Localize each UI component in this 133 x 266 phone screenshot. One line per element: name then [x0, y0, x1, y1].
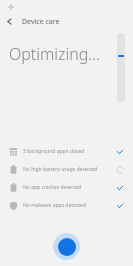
button[interactable]: Stop optimizing [53, 233, 80, 260]
staticText: 3 background apps closed [23, 148, 115, 155]
button[interactable]: No high battery usage detected [0, 160, 133, 178]
staticText: Device care [22, 17, 60, 27]
button[interactable]: No malware apps detected [0, 196, 133, 214]
button[interactable]: No app crashes detected [0, 178, 133, 196]
staticText: Optimizing... [9, 43, 100, 65]
button[interactable]: 3 background apps closed [0, 142, 133, 160]
staticText: No high battery usage detected [23, 166, 115, 173]
staticText: No malware apps detected [23, 202, 115, 209]
button[interactable]: Back [0, 13, 18, 30]
staticText: No app crashes detected [23, 184, 115, 191]
